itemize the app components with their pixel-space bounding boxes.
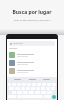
button[interactable] <box>9 41 55 46</box>
button[interactable] <box>7 67 57 75</box>
button[interactable] <box>7 51 57 59</box>
staticText: Todo lo que necesitas, cerca de ti <box>0 18 64 21</box>
button[interactable] <box>7 59 57 67</box>
staticText: Busca por lugar <box>0 9 64 16</box>
button[interactable]: Search <box>52 95 56 99</box>
